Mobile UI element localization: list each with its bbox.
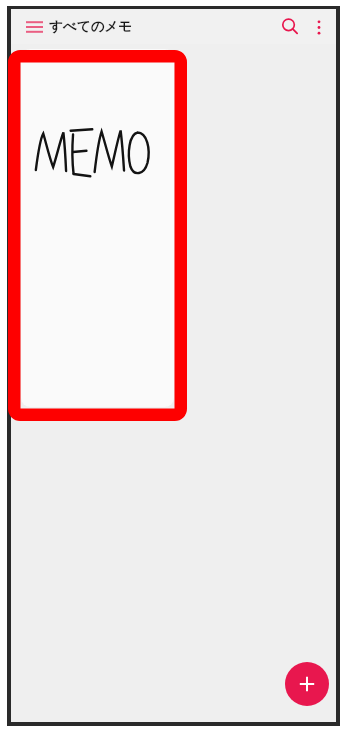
button[interactable]: Search [274,11,305,42]
button[interactable]: Create new note [285,662,329,706]
button[interactable]: More options [305,13,333,41]
button[interactable]: Open navigation menu [22,15,46,39]
button[interactable] [21,49,174,407]
staticText: すべてのメモ [49,18,132,35]
